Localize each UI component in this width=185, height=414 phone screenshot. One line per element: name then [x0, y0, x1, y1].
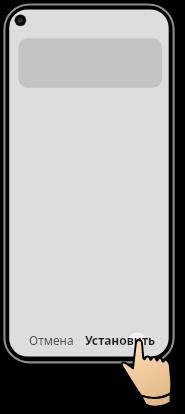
button[interactable]: Отмена	[23, 328, 80, 352]
button[interactable]: Установить	[79, 328, 162, 352]
staticText: Установить	[85, 332, 156, 348]
staticText: Отмена	[29, 332, 74, 348]
